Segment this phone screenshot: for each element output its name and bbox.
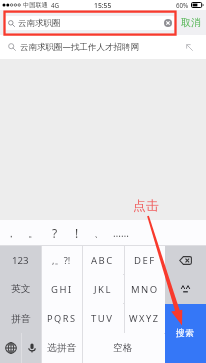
button[interactable]: 。 [22,220,44,246]
other: Fill suggestion [185,43,194,52]
button[interactable]: GHI [41,274,82,304]
staticText: 云南求职圈 [18,18,61,29]
staticText: 空格 [113,342,133,354]
button[interactable]: WXYZ [124,304,165,333]
button[interactable]: 空格 [82,333,164,363]
button[interactable]: 选拼音 [41,333,82,363]
button[interactable]: 云南求职圈 [5,16,175,30]
staticText: WXYZ [129,312,160,325]
staticText: ! [75,225,79,241]
staticText: MNO [131,283,159,296]
staticText: 60% [176,1,189,9]
staticText: 、 [94,227,104,240]
staticText: PQRS [47,312,77,325]
button[interactable]: ? [44,220,66,246]
staticText: 15:55 [94,1,112,10]
button[interactable]: 搜索 [165,304,206,363]
staticText: DEF [134,254,156,267]
button[interactable]: 云南求职圈—找工作人才招聘网 [0,35,206,59]
button[interactable]: JKL [82,274,123,304]
staticText: 。 [28,227,38,240]
button[interactable]: Emoji [165,274,206,304]
button[interactable]: DEF [124,246,165,275]
staticText: 中国联通 [23,1,48,9]
staticText: 取消 [181,16,201,29]
button[interactable]: Backspace [165,246,206,275]
button[interactable]: ， [0,220,22,246]
staticText: ? [52,225,58,241]
button[interactable]: …… [110,220,132,246]
staticText: 拼音 [11,313,31,325]
button[interactable]: 123 [0,246,41,275]
staticText: 123 [12,254,29,267]
staticText: 4G [51,1,60,9]
staticText: …… [113,226,129,240]
staticText: JKL [94,283,112,296]
staticText: ABC [91,254,114,267]
button[interactable]: TUV [82,304,123,333]
staticText: 搜索 [176,328,195,339]
button[interactable]: ,。?! [41,246,82,275]
button[interactable]: 、 [88,220,110,246]
staticText: ,。?! [52,254,71,267]
staticText: ， [6,227,16,240]
button[interactable]: ! [66,220,88,246]
staticText: GHI [51,283,73,296]
button[interactable]: PQRS [41,304,82,333]
staticText: 选拼音 [47,342,77,354]
staticText: TUV [91,312,114,325]
button[interactable]: MNO [124,274,165,304]
button[interactable]: Change keyboard [0,333,21,363]
staticText: 点击 [133,198,159,214]
button[interactable]: ABC [82,246,123,275]
staticText: 英文 [11,283,31,295]
button[interactable]: 取消 [175,10,206,35]
staticText: 云南求职圈—找工作人才招聘网 [20,41,140,53]
button[interactable]: 英文 [0,274,41,304]
button[interactable]: 拼音 [0,304,41,333]
button[interactable]: Voice input [21,333,42,363]
